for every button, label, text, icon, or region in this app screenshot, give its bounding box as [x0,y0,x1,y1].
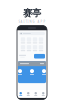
button[interactable]: Tab [24,90,32,98]
button[interactable]: Shortcut [21,45,25,51]
button[interactable]: Shortcut [33,45,37,51]
button[interactable]: Shortcut [33,37,37,43]
button[interactable]: Tab [39,90,47,98]
button[interactable]: Shortcut [21,37,25,43]
staticText: S A I T I N G A P P [18,20,45,23]
button[interactable]: Shortcut [39,45,43,51]
staticText: 赛亭 [23,7,41,19]
button[interactable]: Tab [32,90,39,98]
button[interactable]: Tab [17,90,24,98]
button[interactable]: Join [34,54,45,58]
button[interactable]: Shortcut [39,37,43,43]
button[interactable]: Shortcut [27,45,31,51]
button[interactable]: Shortcut [27,37,31,43]
